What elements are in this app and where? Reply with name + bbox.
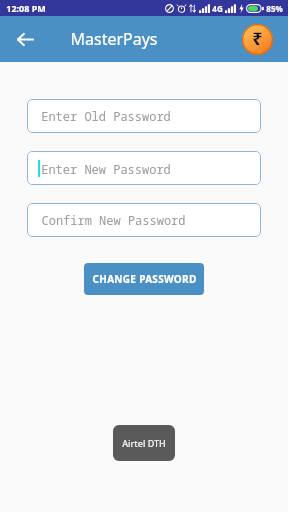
- button[interactable]: Back: [8, 22, 42, 56]
- staticText: MasterPays: [70, 28, 158, 50]
- button[interactable]: Confirm New Password: [27, 203, 261, 237]
- staticText: 12:08 PM: [6, 2, 46, 14]
- button[interactable]: CHANGE PASSWORD: [84, 263, 204, 295]
- staticText: 85%: [266, 3, 283, 14]
- staticText: 4G: [212, 3, 223, 14]
- staticText: Enter Old Password: [41, 108, 171, 124]
- button[interactable]: Enter New Password: [27, 151, 261, 185]
- staticText: Airtel DTH: [122, 437, 166, 449]
- button[interactable]: Enter Old Password: [27, 99, 261, 133]
- staticText: ₹: [252, 26, 263, 51]
- staticText: Enter New Password: [41, 161, 171, 177]
- staticText: Confirm New Password: [41, 212, 186, 228]
- staticText: CHANGE PASSWORD: [92, 272, 197, 286]
- button[interactable]: Wallet: [240, 22, 274, 56]
